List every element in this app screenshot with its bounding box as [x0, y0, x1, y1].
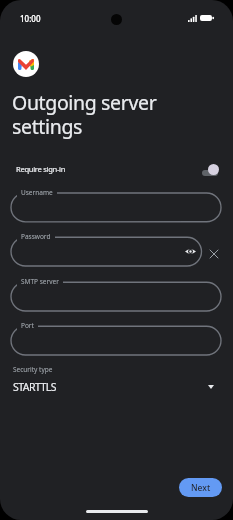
button[interactable] — [11, 282, 221, 311]
staticText: Require sign-in — [16, 164, 66, 174]
button[interactable] — [11, 193, 221, 222]
staticText: Outgoing server settings — [12, 89, 157, 140]
staticText: Next — [191, 482, 211, 494]
staticText: Username — [21, 188, 53, 197]
other: Signal strength — [188, 15, 197, 22]
button[interactable]: Require sign-in — [202, 164, 219, 175]
staticText: Password — [21, 232, 51, 241]
staticText: Port — [21, 321, 34, 330]
button[interactable]: Next — [179, 478, 222, 497]
staticText: STARTTLS — [13, 380, 56, 394]
button[interactable]: Clear — [206, 246, 222, 262]
button[interactable]: Gmail — [13, 51, 39, 77]
staticText: 10:00 — [20, 13, 41, 24]
staticText: Security type — [13, 365, 53, 374]
button[interactable]: Security type — [0, 362, 233, 396]
button[interactable] — [11, 237, 202, 266]
staticText: SMTP server — [21, 277, 59, 286]
other: Battery — [200, 15, 214, 21]
button[interactable] — [11, 326, 221, 355]
button[interactable]: Show password — [184, 247, 196, 256]
button[interactable]: Require sign-in — [0, 157, 233, 181]
